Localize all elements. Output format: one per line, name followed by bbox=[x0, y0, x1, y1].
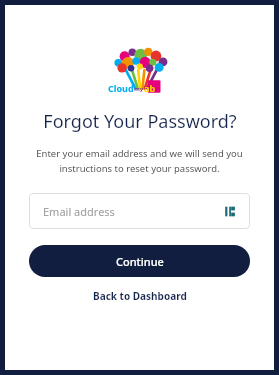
staticText: Email address bbox=[43, 204, 225, 219]
button[interactable]: Back to Dashboard bbox=[83, 283, 197, 309]
staticText: Cloud bbox=[108, 82, 134, 94]
staticText: my bbox=[134, 85, 144, 93]
staticText: Forgot Your Password? bbox=[43, 109, 237, 134]
staticText: ab bbox=[144, 82, 156, 94]
button[interactable]: Email address bbox=[29, 193, 250, 229]
staticText: Back to Dashboard bbox=[93, 289, 187, 303]
other: Password manager bbox=[225, 206, 236, 217]
button[interactable]: Continue bbox=[29, 245, 250, 277]
staticText: Enter your email address and we will sen… bbox=[27, 147, 252, 175]
staticText: Continue bbox=[116, 254, 164, 269]
